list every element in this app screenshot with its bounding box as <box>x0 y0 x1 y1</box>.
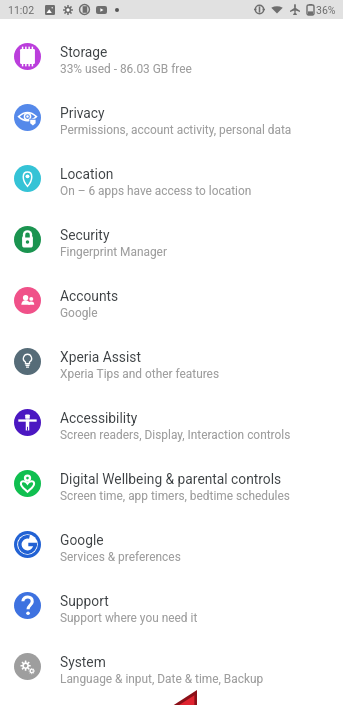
staticText: Privacy <box>60 105 105 121</box>
button[interactable]: Support <box>0 575 343 636</box>
staticText: Storage <box>60 44 108 60</box>
staticText: Accessibility <box>60 410 138 426</box>
button[interactable]: Xperia Assist <box>0 331 343 392</box>
staticText: Permissions, account activity, personal … <box>60 123 292 137</box>
staticText: Screen time, app timers, bedtime schedul… <box>60 489 290 503</box>
staticText: 11:02 <box>8 4 35 16</box>
button[interactable]: Accounts <box>0 270 343 331</box>
staticText: 33% used - 86.03 GB free <box>60 62 192 76</box>
staticText: Accounts <box>60 288 119 304</box>
staticText: Support <box>60 593 109 609</box>
staticText: On – 6 apps have access to location <box>60 184 252 198</box>
button[interactable]: Storage <box>0 26 343 87</box>
staticText: Google <box>60 306 98 320</box>
button[interactable]: Security <box>0 209 343 270</box>
button[interactable]: Location <box>0 148 343 209</box>
staticText: Digital Wellbeing & parental controls <box>60 471 282 487</box>
staticText: Security <box>60 227 110 243</box>
staticText: Fingerprint Manager <box>60 245 167 259</box>
staticText: Xperia Assist <box>60 349 141 365</box>
button[interactable]: Privacy <box>0 87 343 148</box>
staticText: Support where you need it <box>60 611 198 625</box>
staticText: 36% <box>316 4 336 16</box>
staticText: Google <box>60 532 104 548</box>
button[interactable]: Digital Wellbeing & parental controls <box>0 453 343 514</box>
staticText: Screen readers, Display, Interaction con… <box>60 428 291 442</box>
staticText: System <box>60 654 106 670</box>
button[interactable]: Accessibility <box>0 392 343 453</box>
staticText: Xperia Tips and other features <box>60 367 220 381</box>
staticText: Services & preferences <box>60 550 181 564</box>
staticText: Language & input, Date & time, Backup <box>60 672 264 686</box>
staticText: Location <box>60 166 114 182</box>
button[interactable]: Google <box>0 514 343 575</box>
button[interactable]: System <box>0 636 343 697</box>
